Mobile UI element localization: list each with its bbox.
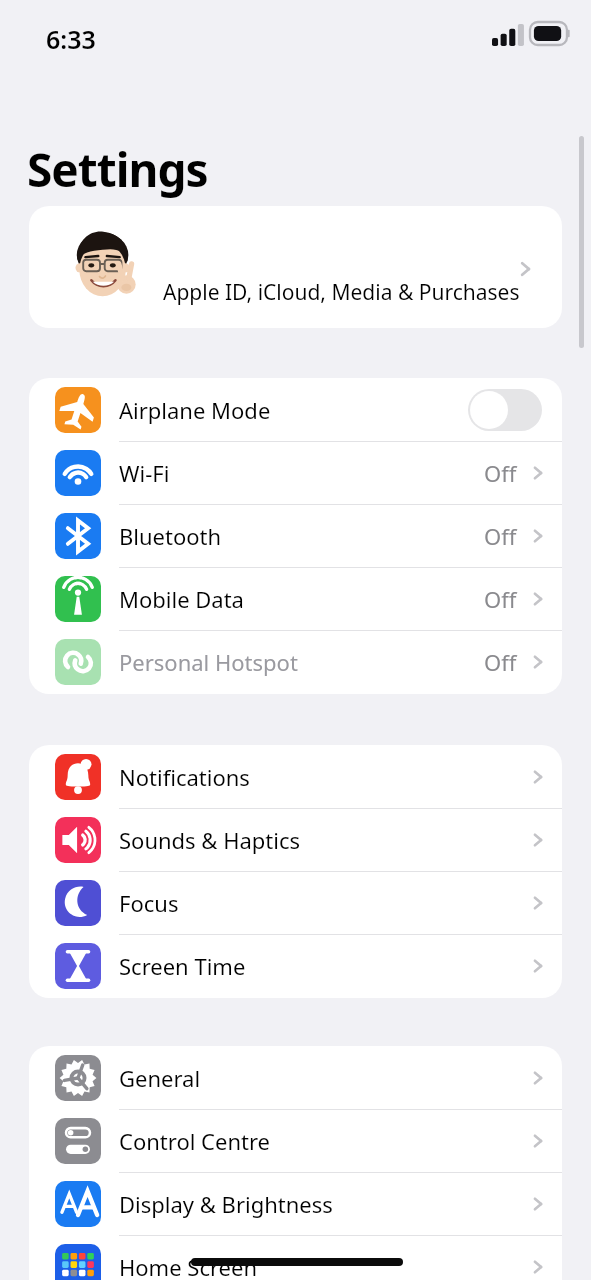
staticText: Settings [27, 138, 208, 201]
staticText: Notifications [119, 762, 250, 792]
button[interactable]: Sounds & Haptics [29, 808, 562, 871]
button[interactable]: Bluetooth [29, 504, 562, 567]
staticText: Off [484, 458, 517, 488]
staticText: Personal Hotspot [119, 647, 298, 677]
button[interactable]: Focus [29, 871, 562, 934]
button[interactable]: Personal Hotspot [29, 630, 562, 693]
button[interactable]: Airplane Mode toggle, off [468, 389, 542, 431]
button[interactable]: Display & Brightness [29, 1172, 562, 1235]
staticText: General [119, 1063, 201, 1093]
staticText: Mobile Data [119, 584, 244, 614]
staticText: Wi-Fi [119, 458, 170, 488]
button[interactable]: Control Centre [29, 1109, 562, 1172]
button[interactable]: Wi-Fi [29, 441, 562, 504]
button[interactable]: Apple ID, iCloud, Media & Purchases [29, 206, 562, 328]
staticText: Off [484, 521, 517, 551]
staticText: Bluetooth [119, 521, 222, 551]
button[interactable]: Home Screen [29, 1235, 562, 1280]
staticText: Display & Brightness [119, 1189, 333, 1219]
staticText: Off [484, 647, 517, 677]
button[interactable]: Screen Time [29, 934, 562, 997]
staticText: Control Centre [119, 1126, 271, 1156]
staticText: Screen Time [119, 951, 246, 981]
staticText: 6:33 [46, 22, 96, 56]
staticText: Home Screen [119, 1252, 258, 1280]
button[interactable]: Notifications [29, 745, 562, 808]
staticText: Apple ID, iCloud, Media & Purchases [163, 278, 520, 307]
button[interactable]: General [29, 1046, 562, 1109]
button[interactable]: Airplane Mode [29, 378, 562, 441]
staticText: Focus [119, 888, 179, 918]
staticText: Airplane Mode [119, 395, 271, 425]
button[interactable]: Mobile Data [29, 567, 562, 630]
staticText: Off [484, 584, 517, 614]
staticText: Sounds & Haptics [119, 825, 301, 855]
